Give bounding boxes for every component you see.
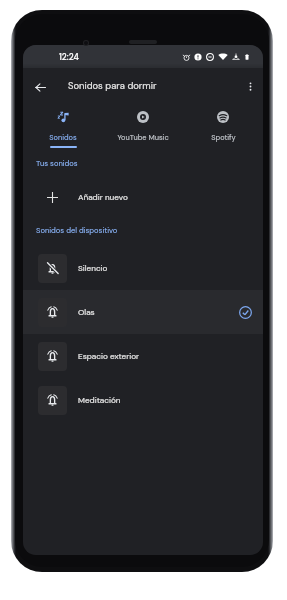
button[interactable]: Sonidos [23,105,103,148]
staticText: Espacio exterior [78,351,140,362]
staticText: YouTube Music [117,133,169,143]
button[interactable]: Meditación [23,378,263,422]
button[interactable]: Spotify [183,105,263,148]
button[interactable]: Silencio [23,246,263,290]
button[interactable]: Back [27,74,53,100]
staticText: Spotify [211,133,236,143]
staticText: Olas [78,307,95,318]
button[interactable]: More options [238,74,262,98]
button[interactable]: Olas [23,290,263,334]
button[interactable]: YouTube Music [103,105,183,148]
button[interactable]: Añadir nuevo [23,175,263,219]
staticText: Tus sonidos [36,158,78,168]
staticText: 12:24 [59,51,79,62]
staticText: Meditación [78,395,121,406]
staticText: Añadir nuevo [78,192,128,203]
staticText: Silencio [78,263,108,274]
staticText: Sonidos [49,133,77,143]
button[interactable]: Espacio exterior [23,334,263,378]
staticText: Sonidos para dormir [68,80,157,92]
staticText: Sonidos del dispositivo [36,225,118,235]
